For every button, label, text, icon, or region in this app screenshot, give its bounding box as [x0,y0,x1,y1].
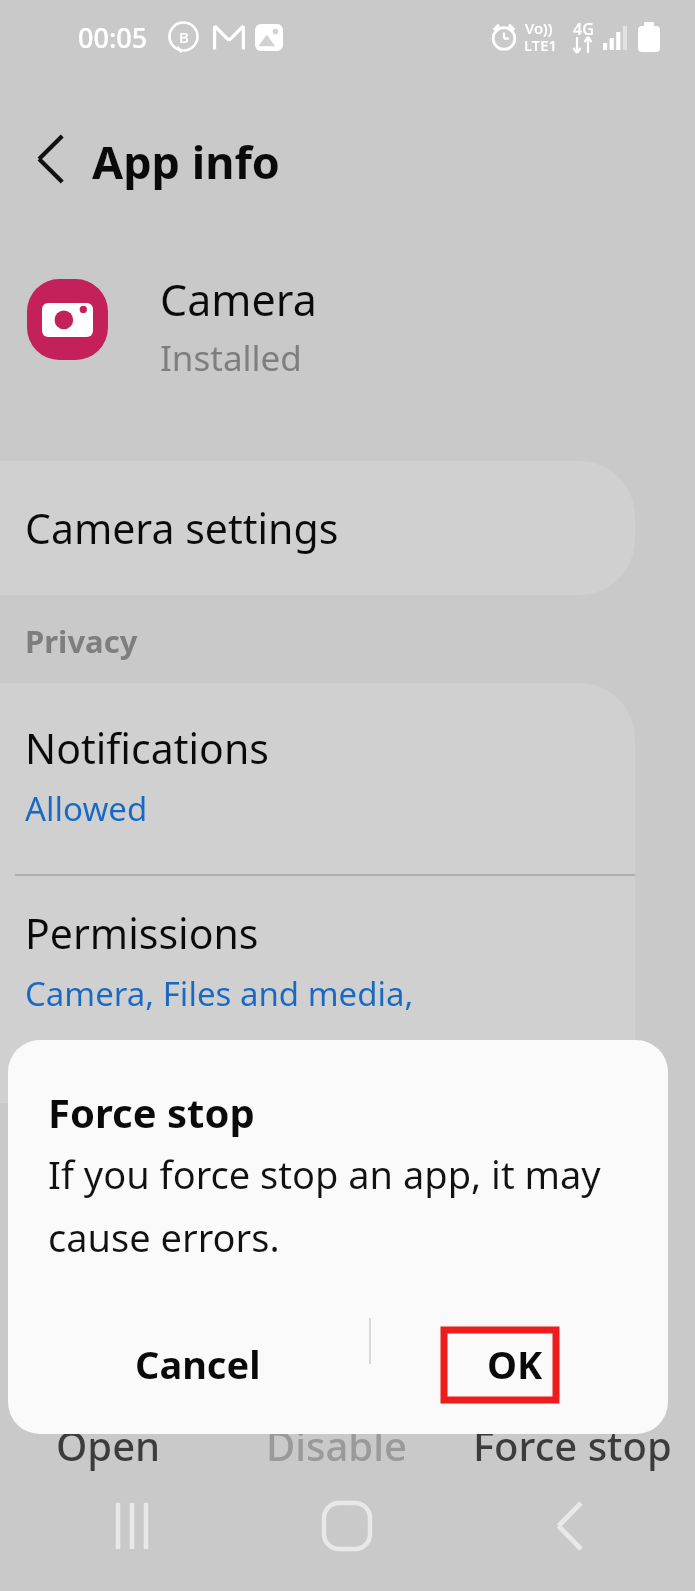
staticText: LTE1 [524,35,558,55]
button[interactable]: Home [301,1489,393,1563]
button[interactable]: Cancel [28,1312,368,1416]
staticText: Permissions [25,905,259,961]
button[interactable]: OK [380,1312,650,1416]
staticText: Force stop [48,1085,255,1139]
staticText: Notifications [25,720,269,776]
staticText: Camera [160,270,317,329]
staticText: Disable [266,1418,407,1472]
staticText: B [176,27,192,47]
staticText: Open [56,1418,161,1472]
staticText: Privacy [25,620,138,662]
staticText: 00:05 [78,19,148,56]
staticText: If you force stop an app, it may [48,1148,601,1200]
button[interactable]: Notifications [0,683,635,874]
staticText: Cancel [135,1338,261,1390]
button[interactable]: Recents [86,1489,178,1563]
staticText: cause errors. [48,1211,280,1263]
staticText: Vo)) [525,18,553,38]
staticText: Installed [160,334,302,382]
staticText: OK [487,1338,543,1390]
button[interactable]: Back [14,128,76,190]
staticText: Allowed [25,786,148,831]
button[interactable]: Camera settings [0,461,635,595]
button[interactable]: Permissions [0,875,635,1075]
staticText: Force stop [473,1418,672,1472]
staticText: 4G [573,18,594,40]
button[interactable]: Back [516,1489,608,1563]
staticText: App info [92,131,280,192]
staticText: Camera settings [25,500,339,556]
staticText: Camera, Files and media, [25,971,414,1016]
